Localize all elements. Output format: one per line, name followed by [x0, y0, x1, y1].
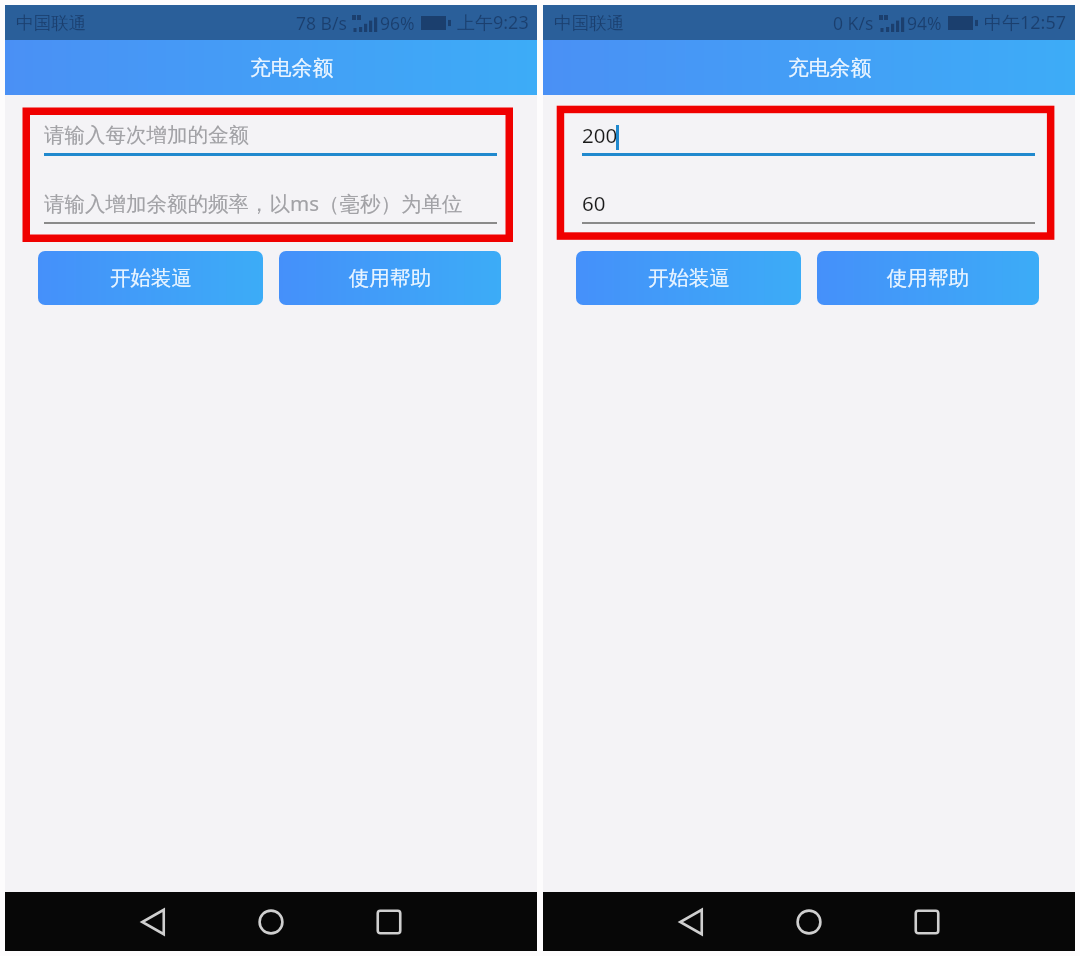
- button[interactable]: 开始装逼: [38, 251, 263, 305]
- staticText: 请输入每次增加的金额: [44, 122, 249, 148]
- staticText: 0 K/s: [833, 11, 874, 35]
- staticText: 94%: [907, 11, 942, 35]
- staticText: 78 B/s: [296, 11, 347, 35]
- button[interactable]: Recents: [902, 897, 952, 947]
- staticText: 中午12:57: [984, 10, 1067, 35]
- staticText: 开始装逼: [648, 265, 730, 291]
- button[interactable]: 请输入每次增加的金额: [44, 119, 497, 155]
- button[interactable]: Home: [784, 897, 834, 947]
- staticText: 60: [582, 189, 606, 217]
- button[interactable]: 60: [582, 187, 1035, 223]
- button[interactable]: 使用帮助: [279, 251, 501, 305]
- staticText: 使用帮助: [349, 265, 431, 291]
- button[interactable]: 开始装逼: [576, 251, 801, 305]
- staticText: 充电余额: [250, 55, 334, 81]
- button[interactable]: Recents: [364, 897, 414, 947]
- staticText: 开始装逼: [110, 265, 192, 291]
- button[interactable]: 请输入增加余额的频率，以ms（毫秒）为单位: [44, 187, 497, 223]
- staticText: 请输入增加余额的频率，以ms（毫秒）为单位: [44, 189, 463, 217]
- staticText: 200: [582, 121, 618, 149]
- staticText: 上午9:23: [457, 10, 529, 35]
- staticText: 充电余额: [788, 55, 872, 81]
- staticText: 中国联通: [554, 12, 624, 34]
- button[interactable]: Back: [128, 897, 178, 947]
- staticText: 96%: [380, 11, 415, 35]
- button[interactable]: 200: [582, 119, 1035, 155]
- staticText: 中国联通: [16, 12, 86, 34]
- button[interactable]: Home: [246, 897, 296, 947]
- staticText: 使用帮助: [887, 265, 969, 291]
- button[interactable]: Back: [666, 897, 716, 947]
- button[interactable]: 使用帮助: [817, 251, 1039, 305]
